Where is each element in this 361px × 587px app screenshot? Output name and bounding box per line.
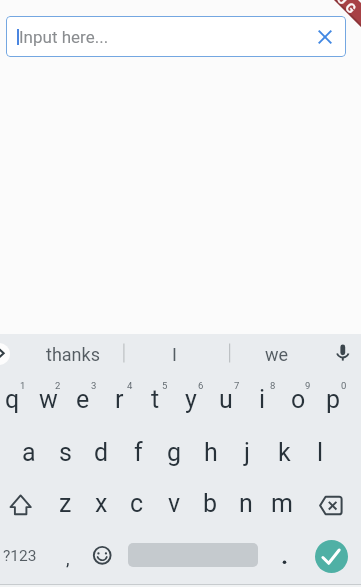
- button[interactable]: ?123: [0, 531, 42, 581]
- staticText: 7: [234, 380, 240, 391]
- button[interactable]: a: [11, 427, 47, 477]
- button[interactable]: p: [315, 374, 351, 424]
- staticText: t: [151, 385, 160, 414]
- staticText: e: [76, 385, 90, 414]
- staticText: ,: [66, 548, 70, 569]
- button[interactable]: e: [65, 374, 101, 424]
- button[interactable]: z: [47, 478, 83, 528]
- staticText: c: [130, 489, 144, 518]
- button[interactable]: we: [252, 336, 302, 372]
- staticText: v: [168, 489, 181, 518]
- staticText: h: [204, 438, 218, 467]
- button[interactable]: ,: [56, 533, 80, 583]
- staticText: 4: [127, 380, 133, 391]
- button[interactable]: d: [83, 427, 119, 477]
- button[interactable]: b: [192, 478, 228, 528]
- button[interactable]: [270, 531, 300, 583]
- staticText: g: [167, 438, 182, 467]
- button[interactable]: [0, 478, 50, 531]
- button[interactable]: w: [30, 374, 66, 424]
- staticText: n: [239, 489, 253, 518]
- staticText: I: [172, 344, 177, 365]
- button[interactable]: x: [83, 478, 119, 528]
- staticText: z: [59, 489, 72, 518]
- button[interactable]: r: [101, 374, 137, 424]
- staticText: a: [22, 438, 36, 467]
- button[interactable]: n: [228, 478, 264, 528]
- staticText: thanks: [46, 344, 100, 365]
- button[interactable]: s: [47, 427, 83, 477]
- staticText: 6: [198, 380, 204, 391]
- button[interactable]: i: [244, 374, 280, 424]
- button[interactable]: [311, 478, 361, 531]
- button[interactable]: c: [119, 478, 155, 528]
- staticText: b: [203, 489, 218, 518]
- staticText: 5: [162, 380, 168, 391]
- staticText: 8: [270, 380, 276, 391]
- button[interactable]: q: [0, 374, 30, 424]
- button[interactable]: h: [193, 427, 229, 477]
- staticText: 0: [341, 380, 347, 391]
- staticText: 3: [91, 380, 97, 391]
- button[interactable]: [311, 23, 339, 51]
- button[interactable]: l: [302, 427, 338, 477]
- staticText: f: [134, 438, 143, 467]
- button[interactable]: [0, 343, 10, 365]
- staticText: p: [326, 385, 341, 414]
- staticText: d: [94, 438, 109, 467]
- button[interactable]: [315, 540, 348, 573]
- button[interactable]: m: [264, 478, 300, 528]
- staticText: u: [219, 385, 233, 414]
- button[interactable]: [88, 531, 119, 583]
- button[interactable]: y: [173, 374, 209, 424]
- button[interactable]: t: [137, 374, 173, 424]
- button[interactable]: I: [154, 336, 194, 372]
- staticText: x: [95, 489, 108, 518]
- staticText: k: [278, 438, 291, 467]
- button[interactable]: j: [229, 427, 265, 477]
- staticText: q: [5, 385, 20, 414]
- staticText: 2: [55, 380, 61, 391]
- button[interactable]: [6, 16, 346, 57]
- staticText: 1: [20, 380, 26, 391]
- button[interactable]: v: [156, 478, 192, 528]
- staticText: j: [244, 438, 250, 467]
- staticText: s: [59, 438, 72, 467]
- staticText: y: [185, 385, 197, 414]
- staticText: l: [317, 438, 324, 467]
- staticText: i: [259, 385, 266, 414]
- button[interactable]: f: [120, 427, 156, 477]
- staticText: 9: [305, 380, 311, 391]
- button[interactable]: thanks: [38, 336, 108, 372]
- button[interactable]: k: [266, 427, 302, 477]
- button[interactable]: g: [156, 427, 192, 477]
- staticText: m: [271, 489, 293, 518]
- staticText: o: [291, 385, 306, 414]
- staticText: ?123: [3, 547, 37, 565]
- staticText: Input here...: [19, 27, 109, 47]
- button[interactable]: u: [208, 374, 244, 424]
- button[interactable]: o: [280, 374, 316, 424]
- staticText: we: [265, 344, 289, 365]
- staticText: r: [115, 385, 124, 414]
- staticText: w: [39, 385, 58, 414]
